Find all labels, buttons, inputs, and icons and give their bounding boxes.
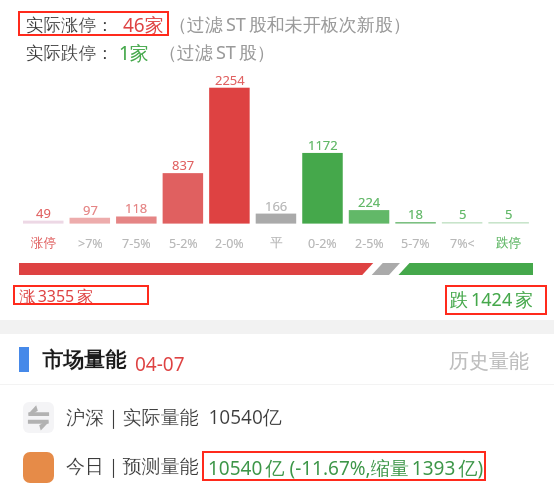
staticText: 历史量能 <box>449 349 529 374</box>
staticText: 2254 <box>215 71 245 89</box>
staticText: 837 <box>172 156 195 174</box>
staticText: 7%< <box>450 235 475 252</box>
staticText: 跌停 <box>496 235 521 251</box>
staticText: 跌 1424 家 <box>450 287 534 312</box>
staticText: （过滤 ST 股） <box>159 40 275 65</box>
staticText: 沪深｜实际量能 10540亿 <box>66 404 282 430</box>
button[interactable]: 今日｜预测量能 <box>0 448 554 486</box>
staticText: 46家 <box>123 12 164 38</box>
staticText: 市场量能 <box>42 347 126 373</box>
staticText: 0-2% <box>308 235 337 252</box>
staticText: 涨停 <box>31 235 56 251</box>
staticText: 7-5% <box>122 235 151 252</box>
other: Switch market <box>23 402 54 433</box>
staticText: 2-0% <box>215 235 244 252</box>
staticText: 涨 3355 家 <box>19 285 93 307</box>
staticText: >7% <box>78 235 103 252</box>
staticText: 1家 <box>119 40 149 66</box>
staticText: 49 <box>36 204 51 222</box>
staticText: 224 <box>358 193 381 211</box>
staticText: 5-2% <box>169 235 198 252</box>
staticText: 10540 亿 (-11.67%,缩量 1393 亿) <box>208 455 484 481</box>
staticText: 5-7% <box>401 235 430 252</box>
staticText: （过滤 ST 股和未开板次新股） <box>169 12 411 37</box>
button[interactable]: Switch market <box>0 398 554 436</box>
staticText: 5 <box>505 205 513 223</box>
staticText: 2-5% <box>355 235 384 252</box>
staticText: 今日｜预测量能 <box>66 455 199 479</box>
staticText: 18 <box>408 205 423 223</box>
staticText: 1172 <box>308 136 338 154</box>
button[interactable]: 历史量能 <box>446 347 532 376</box>
staticText: 118 <box>125 199 148 217</box>
staticText: 5 <box>459 205 467 223</box>
staticText: 实际涨停： <box>26 14 114 36</box>
staticText: 04-07 <box>135 351 185 377</box>
staticText: 97 <box>83 201 98 219</box>
staticText: 166 <box>265 197 288 215</box>
staticText: 实际跌停： <box>26 42 114 64</box>
staticText: 平 <box>270 235 283 251</box>
